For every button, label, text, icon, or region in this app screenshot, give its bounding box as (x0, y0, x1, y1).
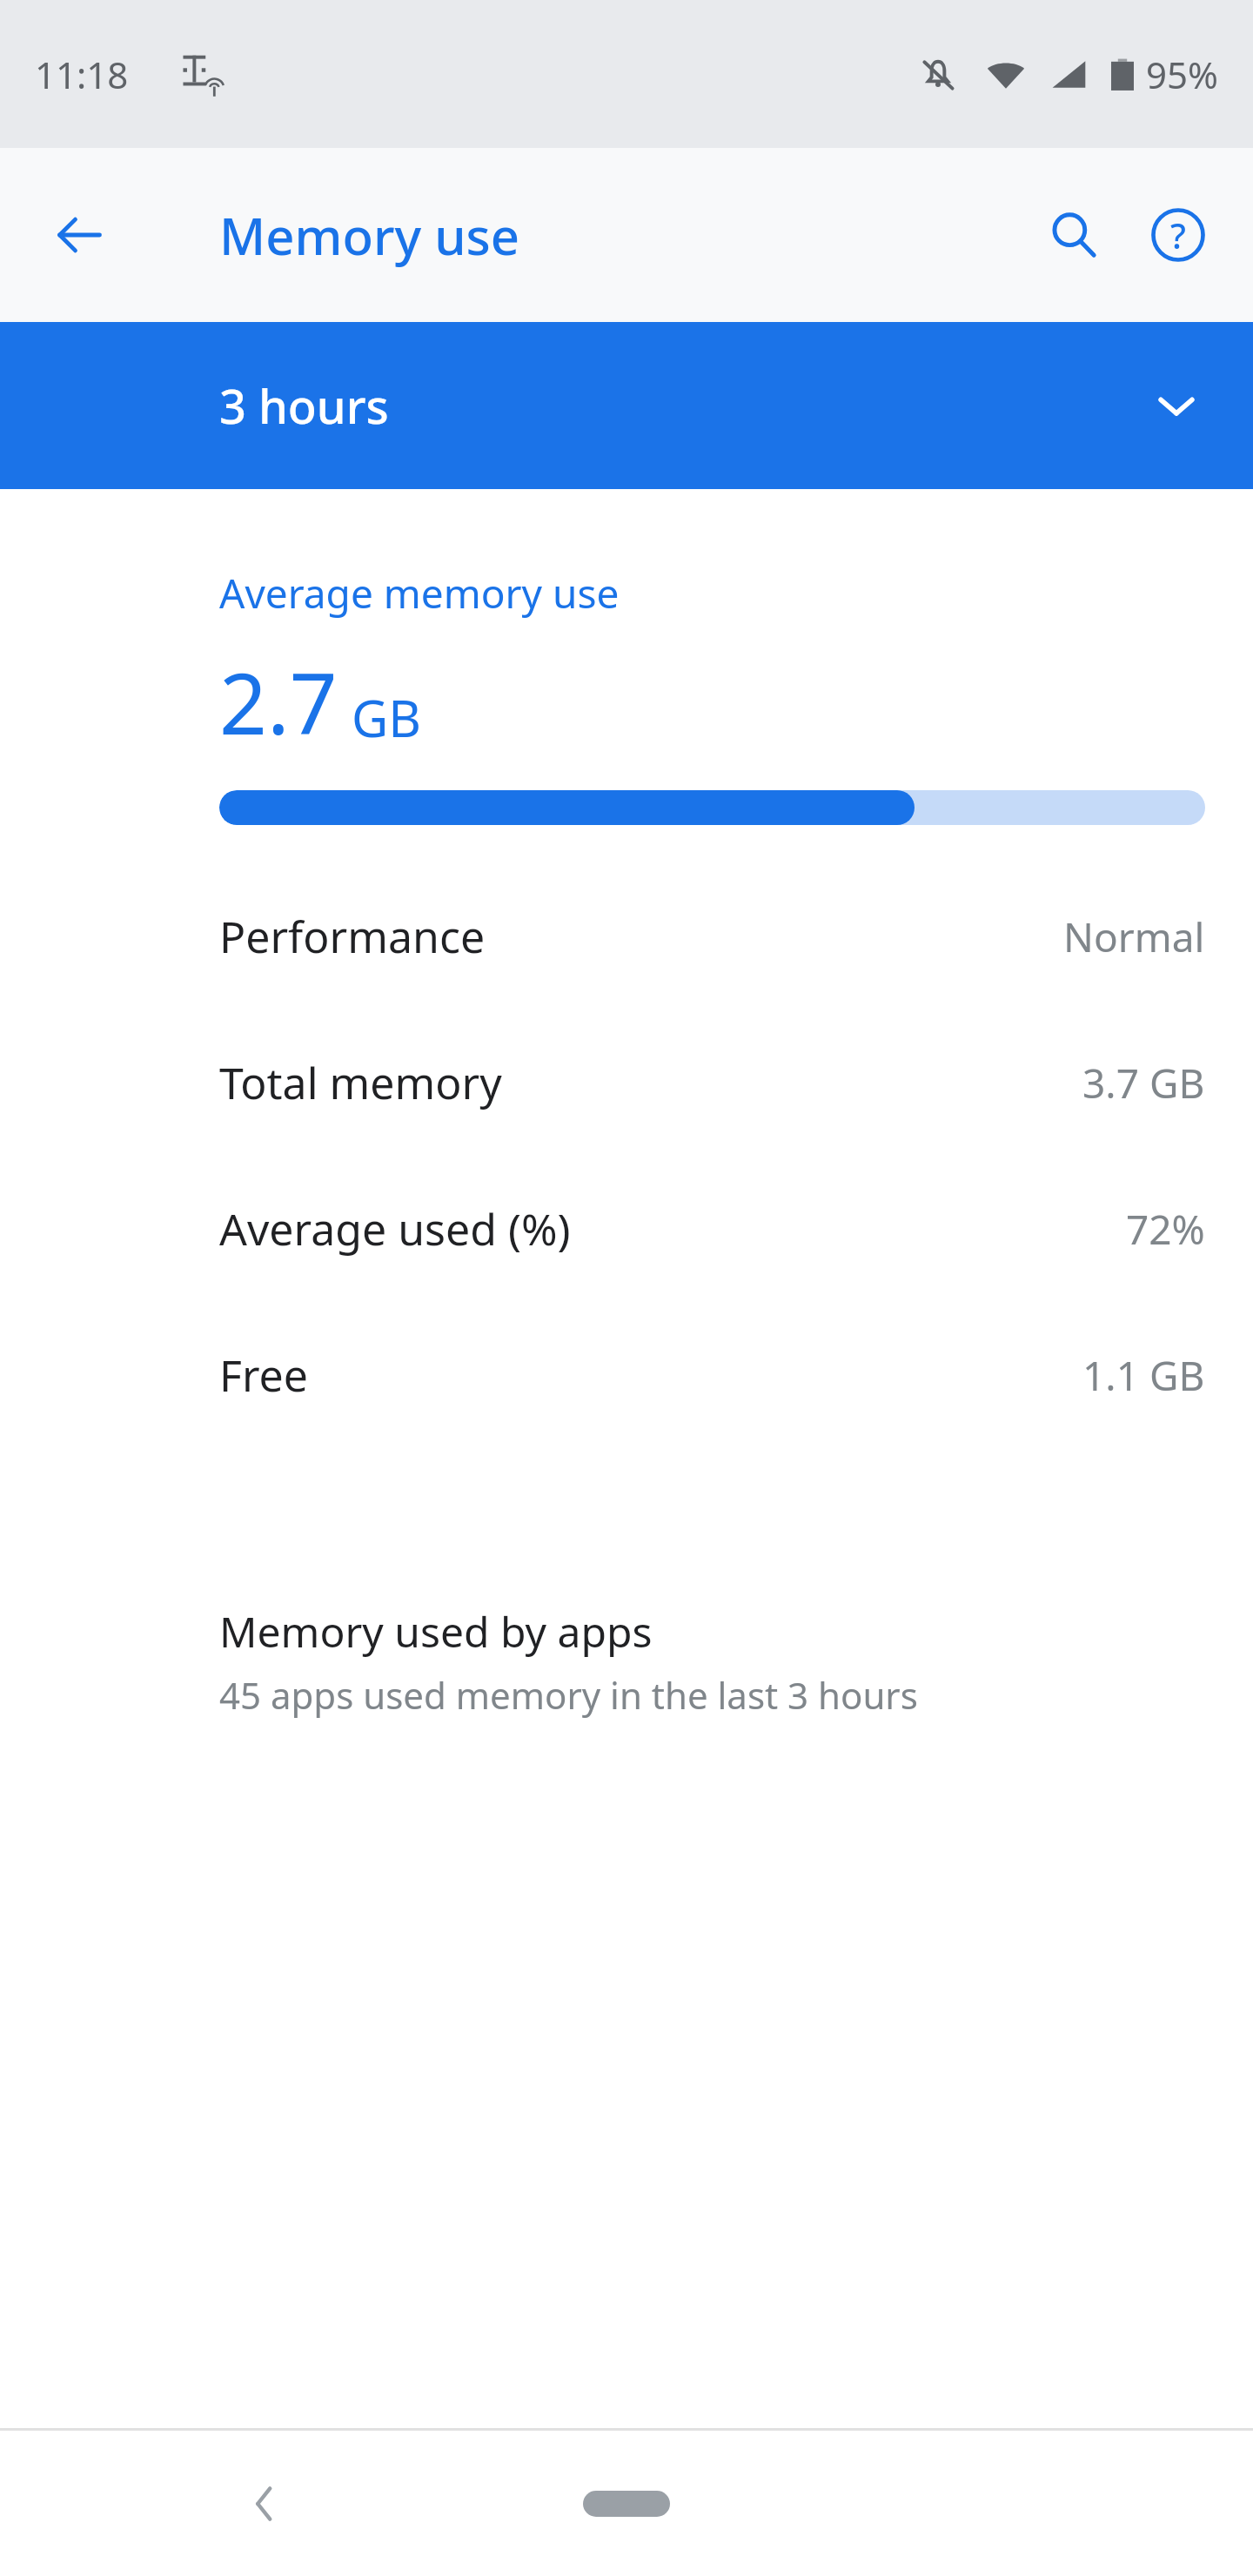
button[interactable]: Help (1126, 183, 1230, 287)
staticText: GB (352, 683, 421, 752)
staticText: 72% (1126, 1202, 1205, 1257)
button[interactable]: Average used (%) (0, 1156, 1253, 1302)
staticText: 11:18 (35, 50, 129, 99)
staticText: Total memory (219, 1053, 502, 1112)
staticText: Memory use (219, 201, 519, 270)
button[interactable]: Total memory (0, 1010, 1253, 1156)
button[interactable]: Memory used by apps (0, 1598, 1253, 1734)
staticText: 3 hours (219, 373, 389, 438)
button[interactable]: Search (1022, 183, 1126, 287)
staticText: 2.7 (219, 645, 338, 759)
button[interactable]: Free (0, 1302, 1253, 1448)
button[interactable]: 3 hours (0, 322, 1253, 489)
button[interactable]: Back (218, 2456, 313, 2552)
staticText: 1.1 GB (1082, 1348, 1205, 1403)
staticText: Memory used by apps (219, 1603, 653, 1660)
staticText: 95% (1146, 50, 1218, 99)
staticText: Average memory use (219, 566, 620, 621)
staticText: 3.7 GB (1082, 1056, 1205, 1110)
button[interactable]: Navigate up (31, 187, 127, 283)
staticText: Normal (1063, 909, 1205, 964)
staticText: ? (1170, 211, 1186, 258)
staticText: Average used (%) (219, 1199, 571, 1258)
staticText: Performance (219, 907, 486, 966)
button[interactable]: Home (557, 2460, 696, 2547)
button[interactable]: Performance (0, 863, 1253, 1010)
staticText: Free (219, 1345, 308, 1405)
staticText: 45 apps used memory in the last 3 hours (219, 1670, 918, 1720)
